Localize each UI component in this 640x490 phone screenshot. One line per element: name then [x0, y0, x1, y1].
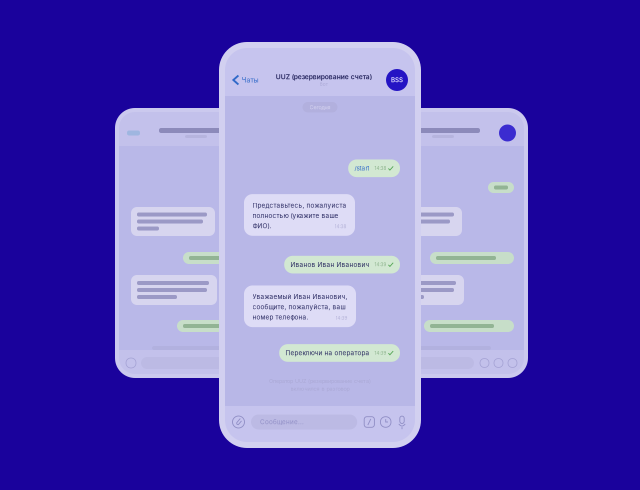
staticText: 14:38: [334, 224, 346, 229]
button[interactable]: Чаты: [225, 69, 261, 91]
staticText: 14:39: [374, 350, 386, 356]
staticText: Чаты: [241, 76, 258, 84]
staticText: бот: [320, 81, 328, 87]
staticText: /start: [354, 164, 369, 172]
staticText: Сегодня: [309, 104, 330, 110]
staticText: Представьтесь, пожалуйста: [252, 202, 346, 209]
staticText: Переключи на оператора: [285, 349, 369, 357]
button[interactable]: Scheduled messages: [374, 417, 391, 427]
staticText: 14:39: [374, 262, 386, 267]
staticText: Оператор UUZ (резервирование счета): [269, 378, 371, 384]
staticText: Иванов Иван Иванович: [290, 261, 369, 268]
staticText: BSS: [391, 76, 403, 84]
staticText: сообщите, пожалуйста, ваш: [252, 303, 345, 311]
staticText: 14:38: [374, 165, 386, 171]
staticText: номер телефона.: [252, 313, 308, 321]
button[interactable]: BSS profile: [386, 69, 415, 91]
button[interactable]: Voice message: [391, 415, 415, 428]
staticText: UUZ (резервирование счета): [276, 73, 372, 81]
staticText: включился в разговор: [290, 385, 349, 392]
staticText: полностью (укажите ваше: [252, 212, 338, 220]
staticText: Сообщение...: [260, 418, 304, 426]
staticText: ФИО).: [252, 222, 271, 230]
staticText: 14:39: [335, 315, 347, 321]
button[interactable]: Attach: [225, 411, 245, 432]
button[interactable]: Stickers: [357, 417, 374, 427]
staticText: Уважаемый Иван Иванович,: [252, 293, 347, 301]
